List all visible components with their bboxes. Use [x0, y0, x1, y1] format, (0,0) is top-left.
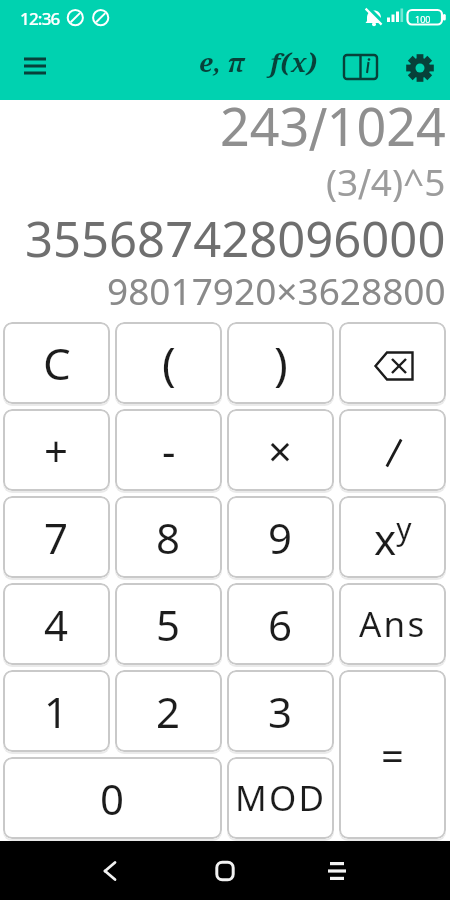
button[interactable]: 7 [3, 496, 110, 578]
staticText: C [43, 333, 71, 393]
button[interactable]: 3 [227, 670, 334, 752]
button[interactable]: - [115, 409, 222, 491]
staticText: 2 [156, 683, 181, 740]
button[interactable]: = [339, 670, 446, 839]
staticText: 12:36 [20, 7, 60, 30]
button[interactable]: f(x) [270, 44, 318, 79]
button[interactable]: 2 [115, 670, 222, 752]
button[interactable] [405, 53, 435, 83]
button[interactable]: 9 [227, 496, 334, 578]
staticText: 0 [100, 770, 125, 827]
staticText: 100 [415, 13, 431, 25]
staticText: Ans [359, 600, 427, 648]
button[interactable]: xy [339, 496, 446, 578]
button[interactable] [203, 851, 247, 891]
staticText: 4 [44, 596, 69, 653]
staticText: 355687428096000 [25, 205, 446, 272]
staticText: × [268, 422, 293, 479]
staticText: 98017920×3628800 [107, 265, 446, 315]
staticText: 7 [44, 509, 69, 566]
staticText: + [44, 422, 69, 479]
button[interactable]: ) [227, 322, 334, 404]
staticText: 3 [268, 683, 293, 740]
staticText: ) [274, 332, 288, 395]
staticText: 8 [156, 509, 181, 566]
staticText: ( [162, 332, 176, 395]
staticText: - [162, 422, 176, 479]
button[interactable]: 0 [3, 757, 222, 839]
button[interactable]: 4 [3, 583, 110, 665]
button[interactable]: × [227, 409, 334, 491]
button[interactable] [339, 409, 446, 491]
button[interactable]: 8 [115, 496, 222, 578]
button[interactable]: MOD [227, 757, 334, 839]
button[interactable] [16, 50, 56, 86]
button[interactable] [342, 52, 380, 84]
button[interactable]: + [3, 409, 110, 491]
staticText: (3∕4)^5 [326, 156, 446, 206]
staticText: = [381, 728, 404, 782]
button[interactable] [88, 851, 132, 891]
staticText: 9 [268, 509, 293, 566]
staticText: 5 [156, 596, 181, 653]
button[interactable]: Ans [339, 583, 446, 665]
button[interactable] [315, 851, 359, 891]
button[interactable]: 5 [115, 583, 222, 665]
staticText: MOD [235, 774, 327, 822]
staticText: 1 [44, 683, 69, 740]
button[interactable]: 1 [3, 670, 110, 752]
button[interactable]: C [3, 322, 110, 404]
button[interactable]: ( [115, 322, 222, 404]
button[interactable]: 6 [227, 583, 334, 665]
staticText: 6 [268, 596, 293, 653]
staticText: 243∕1024 [220, 90, 446, 161]
button[interactable] [339, 322, 446, 404]
button[interactable]: e, π [199, 44, 245, 79]
staticText: xy [374, 508, 412, 567]
